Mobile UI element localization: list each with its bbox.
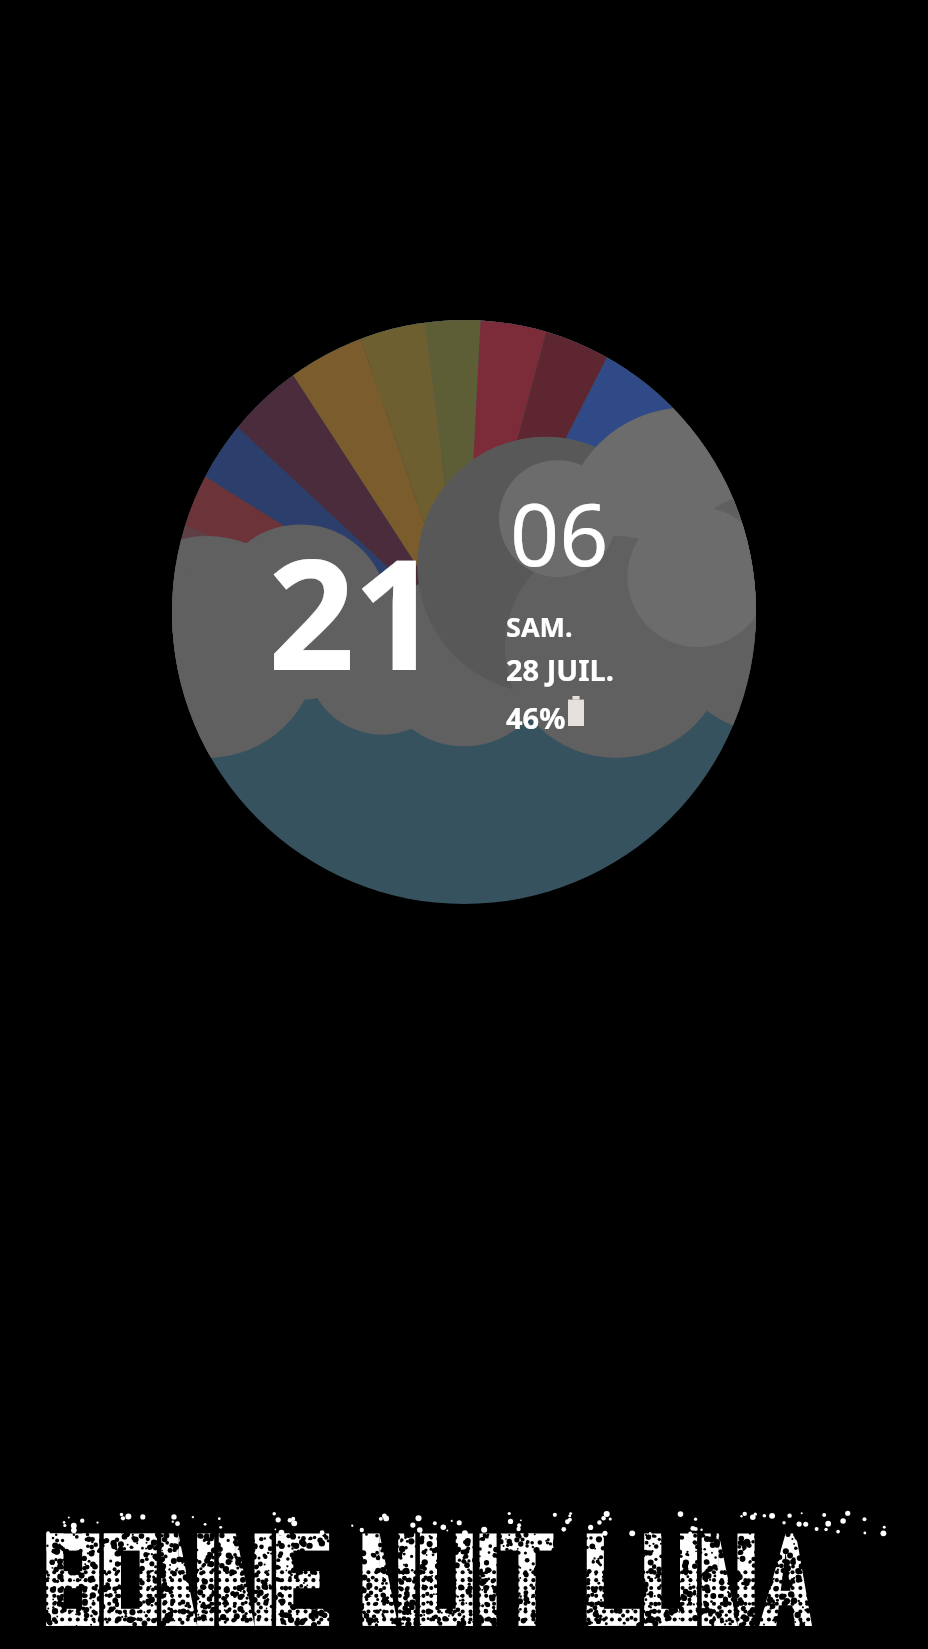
staticText: 21 bbox=[268, 508, 438, 715]
staticText: 28 JUIL. bbox=[506, 650, 614, 689]
staticText: 06 bbox=[510, 474, 609, 591]
button[interactable]: Bonne Nuit Luna bbox=[0, 1418, 928, 1649]
button[interactable]: Bonne Nuit Luna watch face preview bbox=[172, 320, 756, 904]
staticText: 46% bbox=[506, 698, 566, 737]
staticText: SAM. bbox=[506, 608, 573, 645]
